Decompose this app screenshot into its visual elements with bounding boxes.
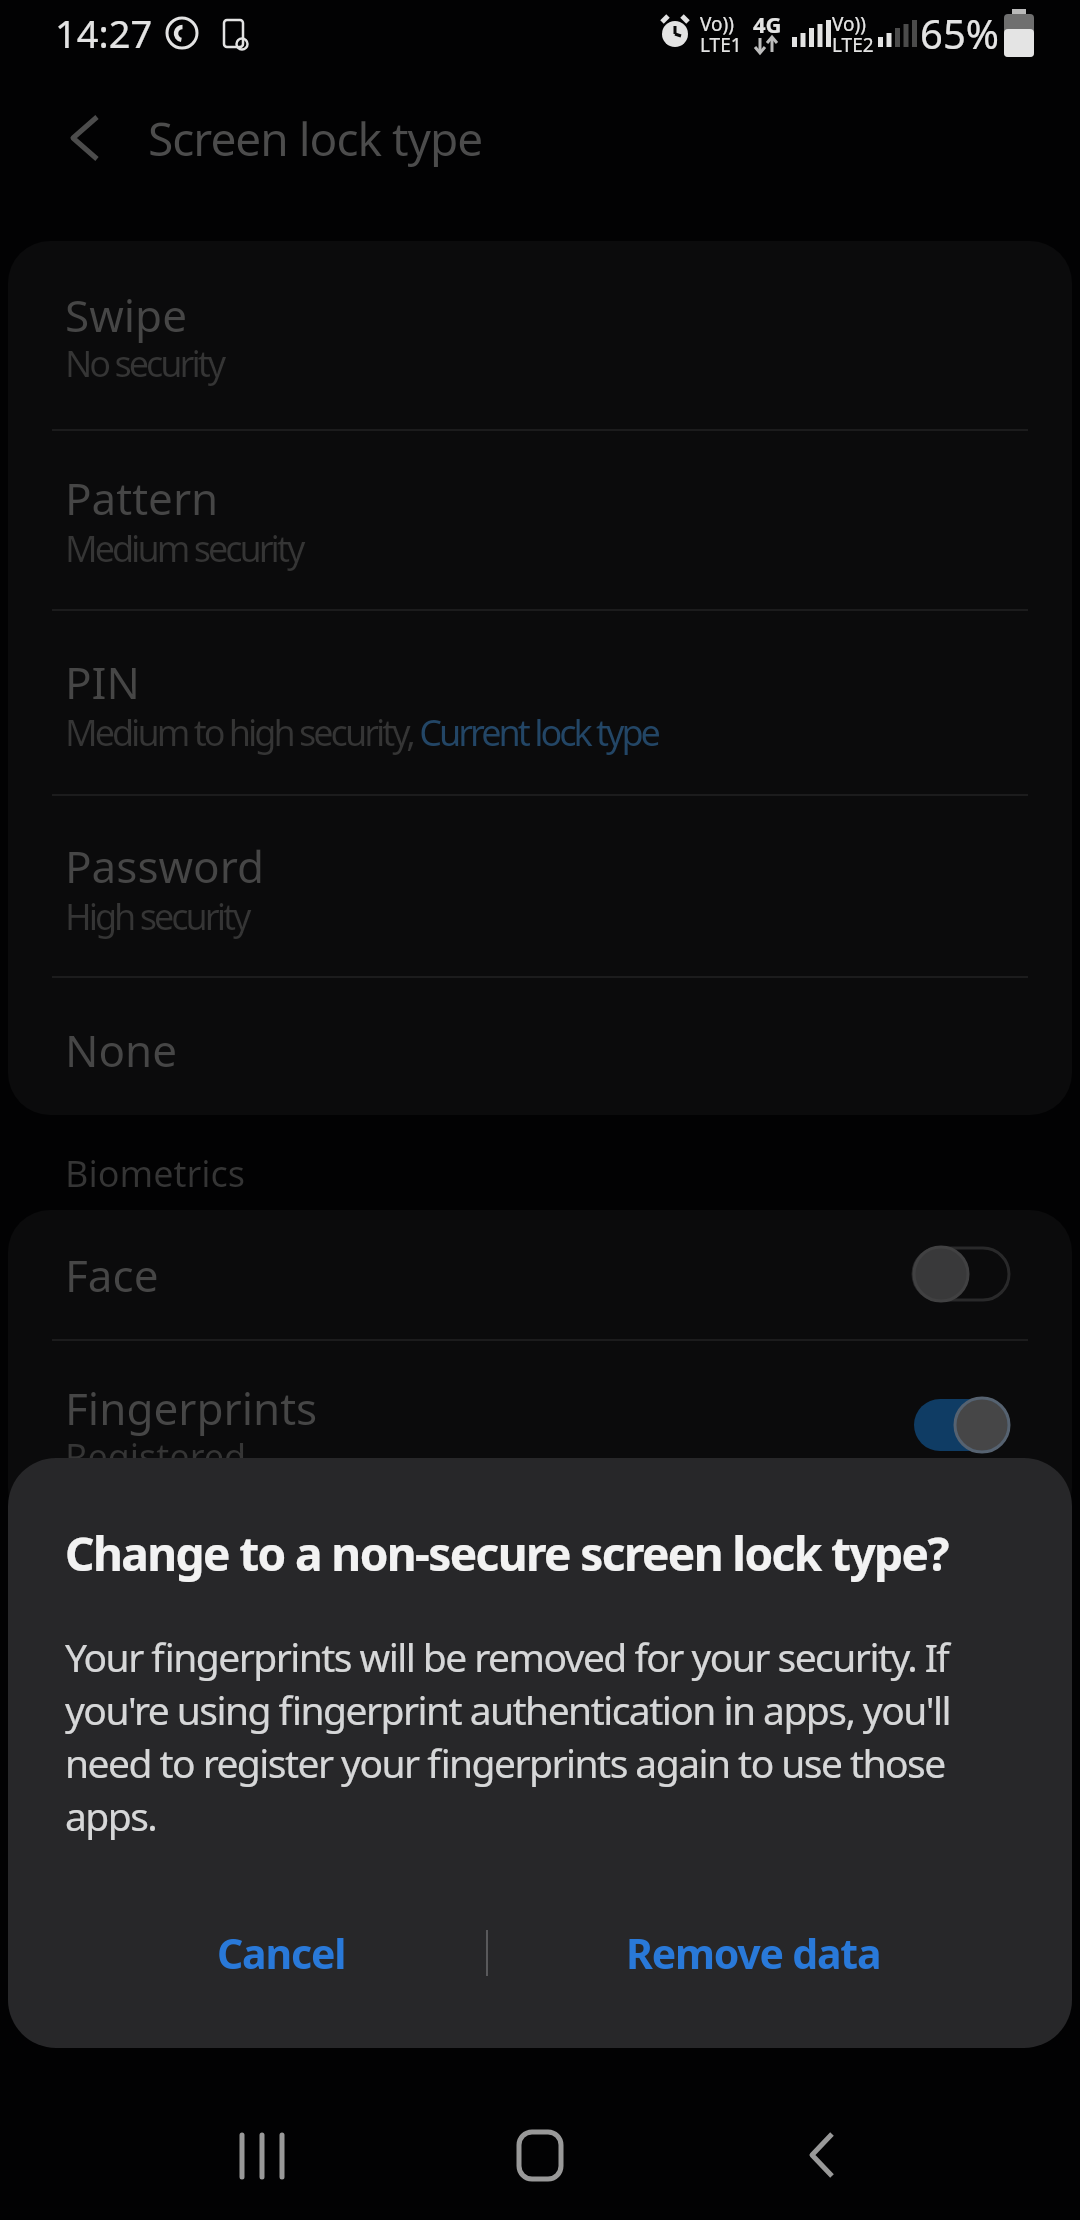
button[interactable] — [8, 610, 1072, 795]
staticText: 14:27 — [55, 7, 153, 59]
staticText: Change to a non-secure screen lock type? — [65, 1522, 948, 1585]
staticText: Vo)) — [832, 11, 866, 37]
staticText: Biometrics — [65, 1149, 246, 1198]
button[interactable]: Remove data — [598, 1908, 908, 1998]
staticText: None — [65, 1020, 178, 1080]
staticText: High security — [65, 892, 249, 941]
staticText: Cancel — [217, 1925, 346, 1981]
button[interactable] — [8, 1210, 1072, 1340]
button[interactable] — [470, 2086, 610, 2220]
button[interactable]: Cancel — [166, 1908, 396, 1998]
staticText: Password — [65, 836, 265, 896]
staticText: Face — [65, 1245, 159, 1305]
staticText: 65% — [920, 6, 999, 60]
staticText: No security — [65, 339, 224, 388]
staticText: Your fingerprints will be removed for yo… — [65, 1630, 951, 1842]
staticText: Fingerprints — [65, 1378, 318, 1438]
staticText: Vo)) — [700, 11, 734, 37]
staticText: Registered — [65, 1432, 247, 1481]
button[interactable] — [192, 2086, 332, 2220]
button[interactable] — [8, 430, 1072, 610]
button[interactable] — [8, 1340, 1072, 1530]
staticText: LTE2 — [832, 32, 874, 58]
staticText: Medium security — [65, 524, 303, 573]
staticText: PIN — [65, 652, 140, 712]
staticText: LTE1 — [700, 32, 742, 58]
button[interactable] — [40, 93, 130, 183]
staticText: Medium to high security, Current lock ty… — [65, 708, 658, 757]
button[interactable] — [8, 977, 1072, 1115]
staticText: Screen lock type — [148, 107, 483, 170]
staticText: Swipe — [65, 285, 187, 345]
button[interactable] — [752, 2086, 892, 2220]
staticText: 4G — [753, 9, 782, 39]
button[interactable] — [8, 795, 1072, 977]
staticText: Pattern — [65, 468, 219, 528]
staticText: Remove data — [626, 1925, 881, 1981]
button[interactable] — [8, 241, 1072, 430]
